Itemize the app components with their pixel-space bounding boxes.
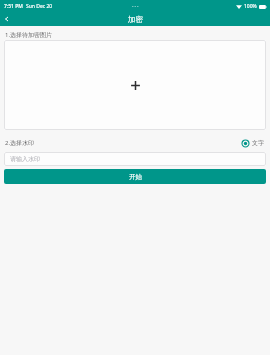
staticText: 2.选择水印 (5, 139, 35, 147)
staticText: 开始 (129, 173, 142, 181)
staticText: 加密 (128, 15, 143, 24)
staticText: 请输入水印 (10, 155, 40, 163)
button[interactable]: 文字 (241, 138, 265, 148)
button[interactable]: 开始 (4, 169, 266, 184)
staticText: 7:51 PM (4, 3, 23, 10)
button[interactable]: 请输入水印 (4, 152, 266, 166)
staticText: Sun Dec 20 (26, 3, 53, 10)
button[interactable]: Add image (4, 40, 266, 130)
staticText: • • • (132, 4, 139, 9)
staticText: 文字 (252, 139, 264, 147)
staticText: 1.选择待加密图片 (5, 31, 53, 39)
button[interactable]: Back (0, 12, 14, 26)
staticText: 100% (244, 3, 257, 10)
